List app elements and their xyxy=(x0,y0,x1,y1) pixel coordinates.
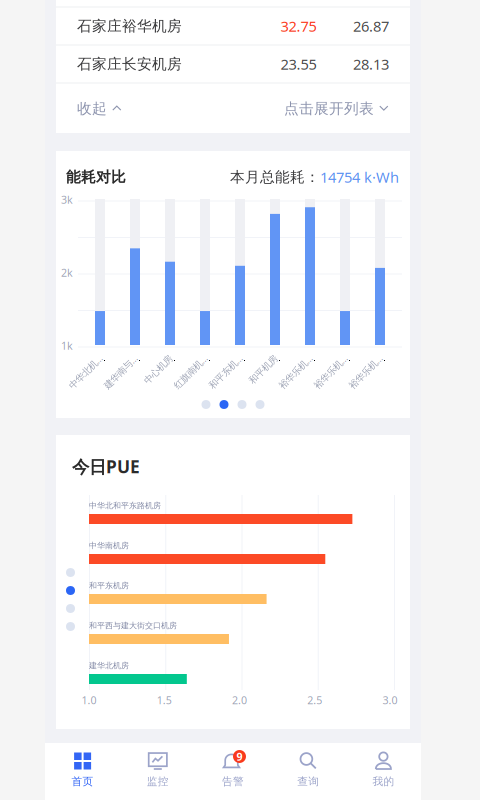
staticText: 能耗对比 xyxy=(66,168,126,186)
staticText: 9 xyxy=(236,749,242,764)
staticText: 和平西与建大街交口机房 xyxy=(89,621,177,630)
staticText: 2k xyxy=(61,265,73,280)
button[interactable]: 收起 xyxy=(56,87,130,129)
staticText: 中心机房 xyxy=(139,349,175,361)
staticText: 和平机房 xyxy=(244,349,280,361)
staticText: 裕华乐机… xyxy=(307,349,350,361)
staticText: 红旗南机… xyxy=(167,349,210,361)
button[interactable]: 我的 xyxy=(346,743,421,800)
button[interactable]: 9 xyxy=(195,743,271,800)
staticText: 2.5 xyxy=(307,693,322,707)
staticText: 3.0 xyxy=(382,693,397,707)
staticText: 中华南机房 xyxy=(89,541,129,550)
staticText: 中华北和平东路机房 xyxy=(89,501,161,510)
button[interactable]: 监控 xyxy=(120,743,195,800)
staticText: 告警 xyxy=(222,775,244,788)
staticText: 石家庄长安机房 xyxy=(77,55,182,73)
staticText: 26.87 xyxy=(353,16,389,36)
staticText: 裕华乐机… xyxy=(342,349,385,361)
staticText: 查询 xyxy=(297,775,319,788)
staticText: 监控 xyxy=(147,775,169,788)
staticText: 和平东机房 xyxy=(89,581,129,590)
button[interactable]: 石家庄裕华机房 xyxy=(56,7,410,44)
button[interactable]: 首页 xyxy=(45,743,120,800)
staticText: 1.5 xyxy=(157,693,172,707)
staticText: 2.0 xyxy=(232,693,247,707)
staticText: 建华南与… xyxy=(97,349,140,361)
staticText: 石家庄裕华机房 xyxy=(77,17,182,35)
staticText: 裕华乐机… xyxy=(272,349,315,361)
button[interactable]: 查询 xyxy=(271,743,346,800)
staticText: 点击展开列表 xyxy=(284,99,374,117)
button[interactable]: 石家庄长安机房 xyxy=(56,45,410,82)
staticText: 首页 xyxy=(72,775,94,788)
staticText: 中华北机… xyxy=(62,349,105,361)
staticText: 28.13 xyxy=(353,54,389,74)
staticText: 今日PUE xyxy=(72,455,140,478)
staticText: 本月总能耗： xyxy=(230,168,320,186)
button[interactable]: 点击展开列表 xyxy=(276,87,410,129)
staticText: 32.75 xyxy=(280,16,316,36)
staticText: 23.55 xyxy=(280,54,316,74)
staticText: 建华北机房 xyxy=(89,661,129,670)
staticText: 3k xyxy=(61,192,73,207)
staticText: 和平东机… xyxy=(202,349,245,361)
staticText: 1k xyxy=(61,338,73,353)
staticText: 14754 k·Wh xyxy=(320,167,399,187)
staticText: 我的 xyxy=(372,775,394,788)
staticText: 收起 xyxy=(77,99,107,117)
staticText: 1.0 xyxy=(81,693,96,707)
